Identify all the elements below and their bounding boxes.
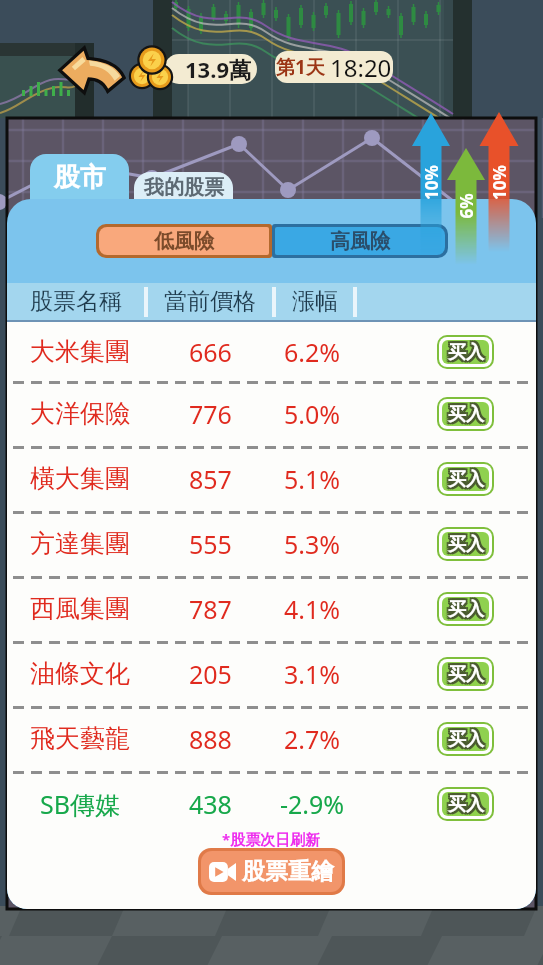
button[interactable]: 飛天藝龍 xyxy=(7,706,536,771)
button[interactable]: 买入 xyxy=(442,727,489,751)
staticText: 买入 xyxy=(448,665,484,686)
staticText: 买入 xyxy=(450,793,486,816)
staticText: 买入 xyxy=(448,728,484,751)
staticText: 买入 xyxy=(450,341,486,364)
staticText: 857 xyxy=(189,462,232,496)
button[interactable]: 买入 xyxy=(442,402,489,426)
staticText: 买入 xyxy=(446,532,482,554)
staticText: 888 xyxy=(189,722,232,756)
staticText: 买入 xyxy=(450,728,486,751)
staticText: 买入 xyxy=(446,535,482,556)
button[interactable]: 买入 xyxy=(442,467,489,491)
staticText: 买入 xyxy=(450,403,486,426)
staticText: SB傳媒 xyxy=(40,787,120,821)
staticText: 买入 xyxy=(446,598,482,621)
staticText: 第1天 xyxy=(276,54,325,80)
button[interactable]: 买入 xyxy=(442,792,489,816)
staticText: 18:20 xyxy=(330,51,392,83)
staticText: 买入 xyxy=(450,532,486,554)
staticText: 买入 xyxy=(448,340,484,362)
staticText: 买入 xyxy=(446,663,482,686)
staticText: 买入 xyxy=(448,403,484,426)
button[interactable]: 买入 xyxy=(442,532,489,556)
button[interactable]: 西風集團 xyxy=(7,576,536,641)
staticText: 6.2% xyxy=(284,335,341,369)
staticText: 买入 xyxy=(450,792,486,814)
staticText: 买入 xyxy=(450,470,486,491)
staticText: 5.0% xyxy=(284,397,341,431)
button[interactable]: 买入 xyxy=(442,597,489,621)
button[interactable]: 13.9萬 xyxy=(164,54,257,84)
button[interactable]: SB傳媒 xyxy=(7,771,536,836)
staticText: 2.7% xyxy=(284,722,341,756)
staticText: 买入 xyxy=(446,795,482,816)
staticText: 买入 xyxy=(450,662,486,684)
staticText: 买入 xyxy=(446,403,482,426)
staticText: 买入 xyxy=(448,405,484,426)
staticText: 买入 xyxy=(446,600,482,621)
staticText: 大米集團 xyxy=(30,336,130,367)
staticText: 买入 xyxy=(446,792,482,814)
staticText: 13.9萬 xyxy=(185,54,251,84)
staticText: 买入 xyxy=(446,468,482,491)
staticText: 205 xyxy=(189,657,232,691)
staticText: 买入 xyxy=(446,405,482,426)
staticText: 我的股票 xyxy=(144,175,224,200)
button[interactable]: 油條文化 xyxy=(7,641,536,706)
staticText: 买入 xyxy=(448,535,484,556)
staticText: 买入 xyxy=(450,533,486,556)
button[interactable]: 橫大集團 xyxy=(7,446,536,511)
staticText: 方達集團 xyxy=(30,528,130,559)
staticText: 10% xyxy=(488,165,511,200)
button[interactable]: 大洋保險 xyxy=(7,381,536,446)
staticText: 买入 xyxy=(448,343,484,364)
staticText: 买入 xyxy=(448,795,484,816)
button[interactable]: 大米集團 xyxy=(7,322,536,381)
staticText: 买入 xyxy=(450,468,486,491)
staticText: 买入 xyxy=(450,467,486,489)
staticText: 买入 xyxy=(446,662,482,684)
button[interactable]: 第1天 xyxy=(275,51,393,83)
staticText: 买入 xyxy=(446,793,482,816)
staticText: 买入 xyxy=(446,665,482,686)
staticText: 买入 xyxy=(448,662,484,684)
button[interactable]: 低風險 xyxy=(99,227,269,255)
staticText: 當前價格 xyxy=(164,287,256,316)
staticText: 买入 xyxy=(446,727,482,749)
staticText: 买入 xyxy=(448,402,484,424)
staticText: 买入 xyxy=(448,727,484,749)
staticText: 买入 xyxy=(448,792,484,814)
staticText: 橫大集團 xyxy=(30,463,130,494)
staticText: 漲幅 xyxy=(292,287,338,316)
staticText: 股市 xyxy=(54,161,106,194)
staticText: 5.3% xyxy=(284,527,341,561)
staticText: 买入 xyxy=(450,663,486,686)
button[interactable]: 股票重繪 xyxy=(201,851,342,892)
staticText: 买入 xyxy=(446,597,482,619)
staticText: 10% xyxy=(420,165,443,200)
staticText: 买入 xyxy=(450,600,486,621)
button[interactable]: 买入 xyxy=(442,662,489,686)
staticText: 买入 xyxy=(448,341,484,364)
staticText: 买入 xyxy=(450,727,486,749)
staticText: 买入 xyxy=(448,600,484,621)
staticText: 股票重繪 xyxy=(242,857,334,886)
staticText: 买入 xyxy=(448,793,484,816)
staticText: 买入 xyxy=(448,730,484,751)
staticText: 5.1% xyxy=(284,462,341,496)
staticText: 776 xyxy=(189,397,232,431)
button[interactable]: 方達集團 xyxy=(7,511,536,576)
button[interactable]: 股市 xyxy=(30,154,129,202)
staticText: 买入 xyxy=(448,468,484,491)
staticText: 油條文化 xyxy=(30,658,130,689)
button[interactable]: 我的股票 xyxy=(134,172,233,202)
button[interactable]: Back xyxy=(60,46,120,90)
button[interactable]: 买入 xyxy=(442,340,489,364)
staticText: 666 xyxy=(189,335,232,369)
staticText: 买入 xyxy=(446,533,482,556)
button[interactable]: 高風險 xyxy=(275,227,445,255)
staticText: 西風集團 xyxy=(30,593,130,624)
staticText: 买入 xyxy=(450,665,486,686)
staticText: 买入 xyxy=(448,598,484,621)
staticText: 买入 xyxy=(446,728,482,751)
